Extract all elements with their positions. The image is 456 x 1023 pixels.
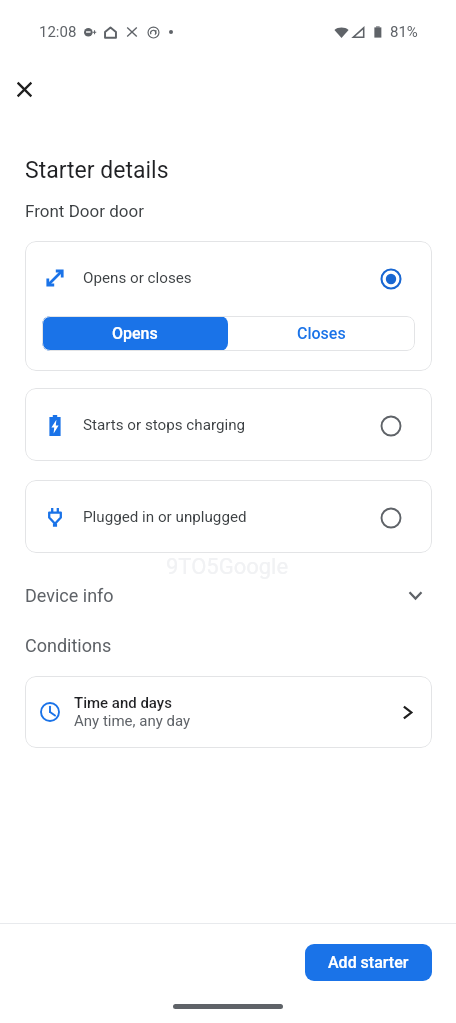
staticText: Any time, any day — [74, 712, 191, 730]
staticText: Conditions — [25, 635, 112, 656]
staticText: 81% — [390, 23, 418, 41]
button[interactable]: Closes — [228, 316, 415, 351]
staticText: Opens — [112, 324, 158, 343]
staticText: Starter details — [25, 157, 169, 184]
staticText: Closes — [297, 324, 346, 343]
button[interactable]: Opens or closes — [25, 241, 432, 315]
button[interactable]: Time and days — [25, 676, 432, 748]
staticText: Add starter — [328, 953, 409, 972]
staticText: Opens or closes — [83, 269, 192, 287]
staticText: 12:08 — [39, 23, 77, 41]
button[interactable]: Starts or stops charging — [25, 388, 432, 461]
staticText: Device info — [25, 585, 114, 606]
button[interactable]: Device info — [0, 576, 456, 614]
button[interactable]: Opens — [42, 316, 228, 351]
staticText: Starts or stops charging — [83, 416, 246, 434]
button[interactable]: Add starter — [305, 944, 432, 981]
button[interactable]: Close — [4, 68, 44, 108]
staticText: Plugged in or unplugged — [83, 508, 247, 526]
staticText: 9TO5Google — [166, 554, 289, 580]
staticText: Time and days — [74, 694, 172, 712]
staticText: Front Door door — [25, 201, 144, 221]
button[interactable]: Plugged in or unplugged — [25, 480, 432, 553]
